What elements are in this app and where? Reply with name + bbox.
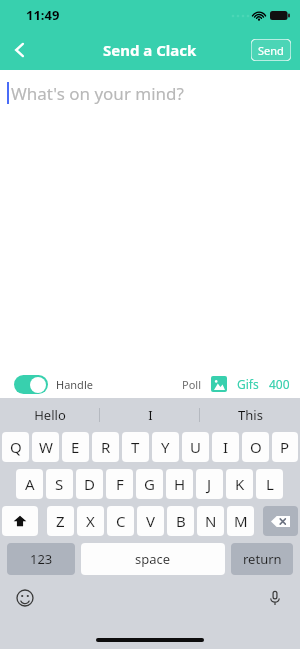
staticText: F (116, 474, 124, 494)
staticText: Send a Clack (103, 40, 197, 60)
button[interactable]: Y (152, 432, 179, 462)
staticText: Z (56, 511, 65, 531)
button[interactable]: return (231, 543, 293, 575)
button[interactable]: Dictate (264, 587, 286, 609)
staticText: L (266, 474, 274, 494)
staticText: M (234, 511, 248, 531)
staticText: 400 (269, 376, 290, 392)
staticText: P (280, 437, 290, 457)
staticText: Hello (34, 406, 66, 424)
staticText: D (84, 474, 95, 494)
button[interactable]: J (196, 469, 223, 499)
staticText: Send (258, 43, 284, 58)
button[interactable]: Handle (14, 375, 93, 394)
button[interactable]: B (167, 506, 194, 536)
button[interactable]: Poll (180, 377, 203, 392)
button[interactable]: L (256, 469, 283, 499)
staticText: R (101, 437, 111, 457)
button[interactable]: T (122, 432, 149, 462)
staticText: I (223, 437, 229, 457)
staticText: J (207, 474, 212, 494)
staticText: N (205, 511, 217, 531)
staticText: B (176, 511, 186, 531)
staticText: Gifs (237, 376, 259, 392)
staticText: U (190, 437, 201, 457)
button[interactable]: 123 (7, 543, 75, 575)
button[interactable]: N (197, 506, 224, 536)
staticText: S (55, 474, 64, 494)
staticText: Q (10, 437, 22, 457)
staticText: Handle (56, 377, 93, 392)
button[interactable]: Hello (0, 398, 100, 432)
staticText: What's on your mind? (11, 82, 184, 105)
button[interactable]: R (92, 432, 119, 462)
staticText: X (86, 511, 95, 531)
button[interactable]: G (136, 469, 163, 499)
button[interactable]: Q (2, 432, 29, 462)
button[interactable]: S (46, 469, 73, 499)
staticText: W (39, 437, 53, 457)
button[interactable]: Back (0, 30, 40, 70)
staticText: H (174, 474, 186, 494)
staticText: K (235, 474, 245, 494)
button[interactable]: K (226, 469, 253, 499)
button[interactable]: space (81, 543, 225, 575)
staticText: This (238, 406, 263, 424)
staticText: 11:49 (26, 6, 60, 24)
button[interactable]: C (107, 506, 134, 536)
button[interactable]: Emoji (14, 587, 36, 609)
button[interactable]: V (137, 506, 164, 536)
staticText: return (243, 550, 282, 568)
staticText: G (144, 474, 155, 494)
button[interactable]: Backspace (263, 506, 298, 536)
button[interactable]: A (16, 469, 43, 499)
button[interactable]: Shift (2, 506, 38, 536)
staticText: V (146, 511, 156, 531)
button[interactable]: P (272, 432, 298, 462)
button[interactable]: E (62, 432, 89, 462)
staticText: 123 (30, 550, 53, 568)
button[interactable]: F (106, 469, 133, 499)
staticText: Poll (182, 377, 201, 392)
button[interactable]: H (166, 469, 193, 499)
staticText: O (250, 437, 262, 457)
button[interactable]: X (77, 506, 104, 536)
staticText: A (25, 474, 35, 494)
button[interactable]: W (32, 432, 59, 462)
staticText: I (148, 406, 153, 424)
staticText: space (135, 550, 171, 568)
staticText: E (71, 437, 80, 457)
staticText: T (131, 437, 140, 457)
button[interactable]: Send (251, 39, 291, 61)
staticText: Y (161, 437, 170, 457)
button[interactable]: I (100, 398, 200, 432)
button[interactable]: M (227, 506, 254, 536)
button[interactable]: U (182, 432, 209, 462)
button[interactable]: Add image (211, 376, 227, 392)
button[interactable]: Gifs (235, 376, 261, 392)
button[interactable]: This (200, 398, 300, 432)
staticText: C (116, 511, 126, 531)
button[interactable]: O (242, 432, 269, 462)
button[interactable]: D (76, 469, 103, 499)
button[interactable]: Z (47, 506, 74, 536)
button[interactable]: I (212, 432, 239, 462)
